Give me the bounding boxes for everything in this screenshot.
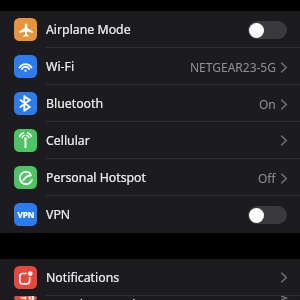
button[interactable]: VPN: [0, 196, 300, 233]
button[interactable]: Notifications: [0, 259, 300, 296]
staticText: Off: [258, 170, 276, 186]
staticText: Wi-Fi: [46, 58, 75, 75]
staticText: Cellular: [46, 132, 90, 149]
button[interactable]: Airplane Mode: [0, 11, 300, 48]
staticText: Personal Hotspot: [46, 169, 146, 186]
staticText: Sounds & Haptics: [46, 296, 148, 300]
button[interactable]: Sounds & Haptics: [0, 296, 300, 300]
button[interactable]: Bluetooth: [0, 85, 300, 122]
staticText: VPN: [17, 209, 35, 220]
button[interactable]: Toggle: [248, 206, 287, 224]
staticText: Airplane Mode: [46, 21, 131, 38]
staticText: Bluetooth: [46, 95, 104, 112]
staticText: NETGEAR23-5G: [190, 59, 276, 75]
button[interactable]: Wi-Fi: [0, 48, 300, 85]
staticText: VPN: [46, 206, 71, 223]
staticText: Notifications: [46, 269, 120, 286]
button[interactable]: Cellular: [0, 122, 300, 159]
button[interactable]: Toggle: [248, 21, 287, 39]
staticText: On: [259, 96, 276, 112]
button[interactable]: Personal Hotspot: [0, 159, 300, 196]
